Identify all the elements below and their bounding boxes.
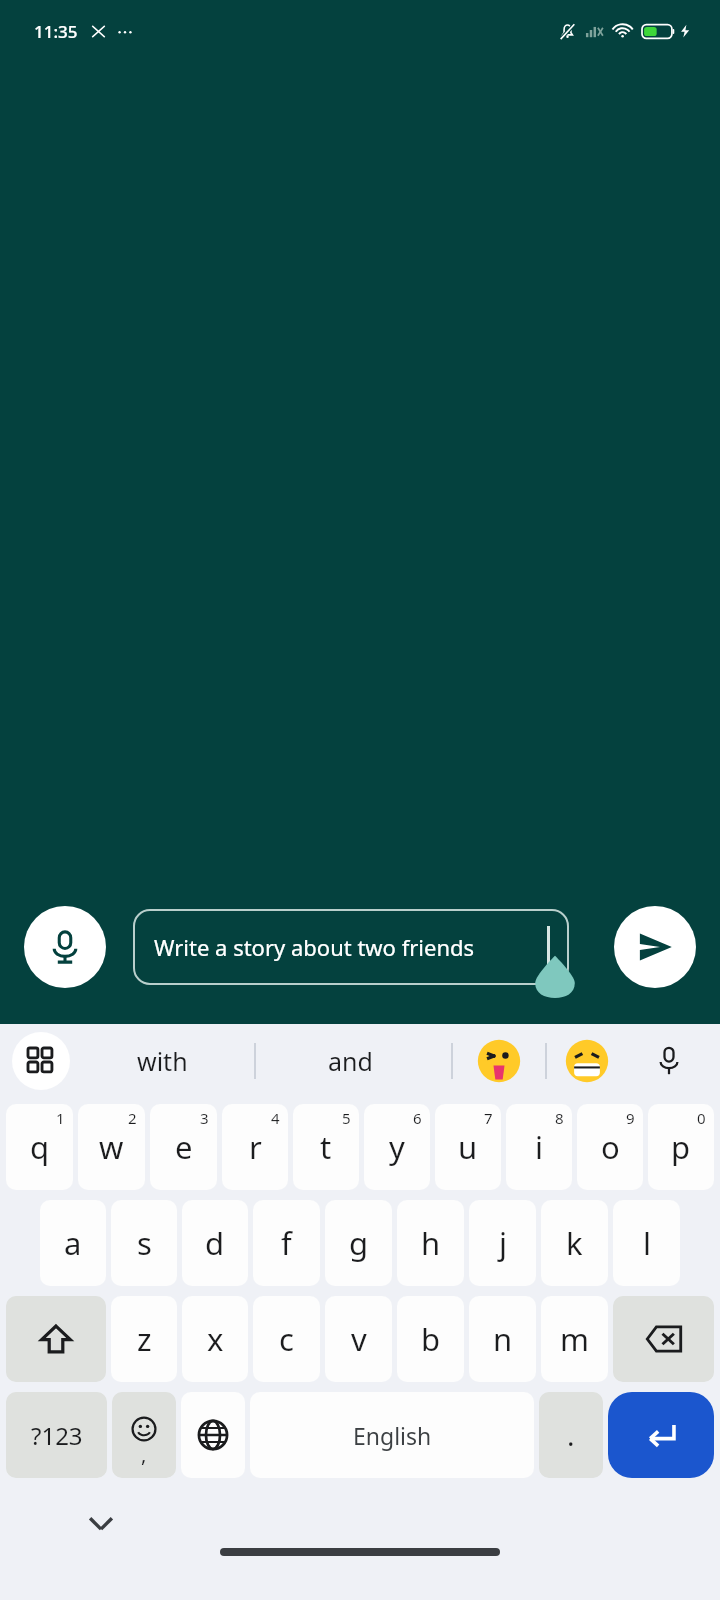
staticText: 7 — [484, 1108, 493, 1128]
button[interactable]: Emoji — [112, 1392, 176, 1478]
button[interactable]: a — [40, 1200, 106, 1286]
button[interactable] — [470, 1032, 528, 1090]
staticText: q — [30, 1126, 50, 1168]
button[interactable]: c — [253, 1296, 320, 1382]
button[interactable]: q — [6, 1104, 73, 1190]
staticText: 9 — [626, 1108, 635, 1128]
button[interactable]: v — [325, 1296, 392, 1382]
staticText: 3 — [200, 1108, 209, 1128]
button[interactable]: o — [577, 1104, 643, 1190]
button[interactable]: Keyboard menu — [12, 1032, 70, 1090]
button[interactable]: . — [539, 1392, 603, 1478]
staticText: b — [421, 1318, 441, 1360]
button[interactable]: Write a story about two friends — [134, 910, 568, 984]
button[interactable]: with — [98, 1024, 226, 1098]
button[interactable]: Voice typing — [644, 1036, 694, 1086]
button[interactable]: s — [111, 1200, 177, 1286]
button[interactable]: z — [111, 1296, 177, 1382]
staticText: o — [601, 1126, 620, 1168]
staticText: and — [328, 1044, 373, 1078]
button[interactable]: f — [253, 1200, 320, 1286]
button[interactable]: Change language — [181, 1392, 245, 1478]
button[interactable]: m — [541, 1296, 608, 1382]
staticText: 4 — [271, 1108, 280, 1128]
button[interactable]: x — [182, 1296, 248, 1382]
button[interactable]: n — [469, 1296, 536, 1382]
staticText: p — [671, 1126, 691, 1168]
button[interactable]: Send — [614, 906, 696, 988]
button[interactable]: y — [364, 1104, 430, 1190]
staticText: d — [205, 1222, 225, 1264]
button[interactable]: g — [325, 1200, 392, 1286]
button[interactable] — [558, 1032, 616, 1090]
staticText: English — [353, 1420, 432, 1451]
button[interactable]: English — [250, 1392, 534, 1478]
staticText: k — [566, 1222, 583, 1264]
staticText: e — [175, 1126, 193, 1168]
staticText: t — [320, 1126, 332, 1168]
staticText: f — [281, 1222, 292, 1264]
button[interactable]: and — [286, 1024, 414, 1098]
staticText: l — [643, 1222, 651, 1264]
staticText: 5 — [342, 1108, 351, 1128]
staticText: u — [458, 1126, 478, 1168]
button[interactable]: Backspace — [613, 1296, 714, 1382]
staticText: m — [560, 1318, 589, 1360]
staticText: 6 — [413, 1108, 422, 1128]
staticText: 8 — [555, 1108, 564, 1128]
button[interactable]: Hide keyboard — [84, 1506, 118, 1540]
staticText: z — [137, 1318, 152, 1360]
staticText: with — [137, 1044, 188, 1078]
staticText: x — [207, 1318, 224, 1360]
button[interactable]: Shift — [6, 1296, 106, 1382]
button[interactable]: j — [469, 1200, 536, 1286]
staticText: 0 — [697, 1108, 706, 1128]
staticText: y — [389, 1126, 405, 1168]
staticText: w — [99, 1126, 124, 1168]
button[interactable]: Voice input — [24, 906, 106, 988]
button[interactable]: ?123 — [6, 1392, 107, 1478]
staticText: Write a story about two friends — [154, 932, 475, 962]
staticText: j — [499, 1222, 507, 1264]
button[interactable]: e — [150, 1104, 217, 1190]
button[interactable]: p — [648, 1104, 714, 1190]
staticText: h — [421, 1222, 441, 1264]
button[interactable]: t — [293, 1104, 359, 1190]
button[interactable]: w — [78, 1104, 145, 1190]
button[interactable]: i — [506, 1104, 572, 1190]
staticText: 2 — [128, 1108, 137, 1128]
staticText: c — [279, 1318, 294, 1360]
staticText: ?123 — [31, 1419, 83, 1452]
button[interactable]: k — [541, 1200, 608, 1286]
staticText: i — [535, 1126, 543, 1168]
staticText: s — [137, 1222, 152, 1264]
staticText: 11:35 — [34, 20, 78, 43]
button[interactable]: h — [397, 1200, 464, 1286]
button[interactable]: r — [222, 1104, 288, 1190]
button[interactable]: Enter — [608, 1392, 714, 1478]
button[interactable]: l — [613, 1200, 680, 1286]
button[interactable]: b — [397, 1296, 464, 1382]
button[interactable]: u — [435, 1104, 501, 1190]
staticText: . — [567, 1416, 575, 1454]
staticText: r — [249, 1126, 262, 1168]
staticText: a — [64, 1222, 82, 1264]
staticText: 1 — [56, 1108, 65, 1128]
staticText: v — [351, 1318, 367, 1360]
staticText: n — [493, 1318, 513, 1360]
staticText: , — [141, 1441, 147, 1468]
staticText: g — [349, 1222, 369, 1264]
button[interactable]: d — [182, 1200, 248, 1286]
